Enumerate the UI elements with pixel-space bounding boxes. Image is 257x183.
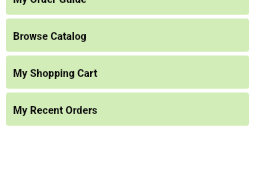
staticText: My Shopping Cart bbox=[13, 67, 98, 79]
button[interactable]: My Shopping Cart bbox=[6, 56, 249, 89]
staticText: Browse Catalog bbox=[13, 30, 87, 42]
staticText: My Order Guide bbox=[13, 0, 87, 5]
button[interactable]: My Recent Orders bbox=[6, 93, 249, 126]
button[interactable]: My Order Guide bbox=[6, 0, 249, 15]
button[interactable]: Browse Catalog bbox=[6, 19, 249, 52]
staticText: My Recent Orders bbox=[13, 104, 98, 116]
